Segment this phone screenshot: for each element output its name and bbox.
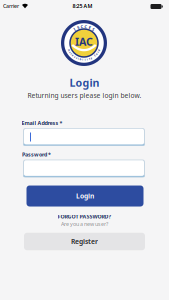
button[interactable]: FORGOT PASSWORD? <box>57 213 111 220</box>
staticText: l <box>85 58 86 61</box>
textField[interactable] <box>24 133 144 140</box>
staticText: y <box>90 56 92 60</box>
button[interactable]: Register <box>24 233 145 250</box>
staticText: a <box>96 52 98 55</box>
staticText: c <box>71 52 72 55</box>
staticText: c <box>70 50 71 54</box>
staticText: S <box>92 26 94 32</box>
staticText: C <box>81 24 84 29</box>
staticText: i <box>87 57 88 61</box>
staticText: Register <box>71 237 98 246</box>
staticText: s <box>76 56 77 60</box>
staticText: I <box>74 26 76 32</box>
staticText: i <box>78 57 79 60</box>
staticText: d <box>98 48 100 52</box>
staticText: E <box>89 25 91 30</box>
staticText: Password * <box>22 151 51 158</box>
staticText: Are you a new user? <box>61 220 108 228</box>
staticText: IAC <box>75 34 93 49</box>
staticText: e <box>72 54 74 57</box>
staticText: Email Address * <box>21 119 62 127</box>
staticText: A <box>68 48 70 52</box>
staticText: C <box>94 54 96 57</box>
staticText: Login <box>76 192 94 200</box>
staticText: S <box>77 25 79 30</box>
staticText: i <box>82 58 83 61</box>
button[interactable]: Login <box>26 185 143 206</box>
staticText <box>93 55 94 58</box>
staticText: s <box>74 55 75 58</box>
staticText: t <box>89 57 90 60</box>
staticText: b <box>80 57 82 61</box>
staticText: r <box>97 50 98 54</box>
staticText: 8:25 AM <box>72 2 92 10</box>
staticText: FORGOT PASSWORD? <box>57 213 111 220</box>
staticText: C <box>84 24 87 29</box>
staticText: Carrier <box>3 2 19 10</box>
staticText: Login <box>69 75 99 90</box>
staticText: Returning users please login below. <box>27 91 141 100</box>
